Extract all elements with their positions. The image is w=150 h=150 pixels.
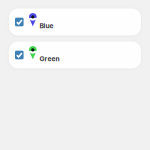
staticText: Blue: [39, 22, 53, 30]
button[interactable]: Blue: [9, 8, 141, 35]
button[interactable]: Green: [9, 41, 141, 68]
staticText: Green: [39, 55, 59, 63]
